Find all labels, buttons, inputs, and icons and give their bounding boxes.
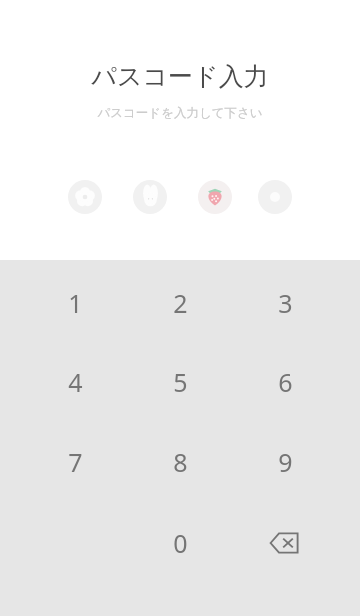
staticText: パスコード入力 bbox=[91, 61, 269, 92]
staticText: 8 bbox=[173, 445, 188, 479]
staticText: 5 bbox=[173, 365, 188, 399]
staticText: 0 bbox=[173, 526, 188, 560]
button[interactable]: Backspace bbox=[240, 513, 330, 573]
button[interactable]: 3 bbox=[240, 273, 330, 333]
button[interactable]: 8 bbox=[135, 432, 225, 492]
staticText: 3 bbox=[278, 286, 293, 320]
staticText: パスコードを入力して下さい bbox=[97, 105, 263, 121]
button[interactable]: 2 bbox=[135, 273, 225, 333]
staticText: 7 bbox=[68, 445, 83, 479]
staticText: 2 bbox=[173, 286, 188, 320]
button[interactable]: 1 bbox=[30, 273, 120, 333]
staticText: 1 bbox=[68, 286, 83, 320]
button[interactable]: 4 bbox=[30, 352, 120, 412]
staticText: 9 bbox=[278, 445, 293, 479]
button[interactable]: 9 bbox=[240, 432, 330, 492]
button[interactable]: 0 bbox=[135, 513, 225, 573]
button[interactable]: 5 bbox=[135, 352, 225, 412]
staticText: 4 bbox=[68, 365, 83, 399]
staticText: 6 bbox=[278, 365, 293, 399]
button[interactable]: 6 bbox=[240, 352, 330, 412]
button[interactable]: 7 bbox=[30, 432, 120, 492]
